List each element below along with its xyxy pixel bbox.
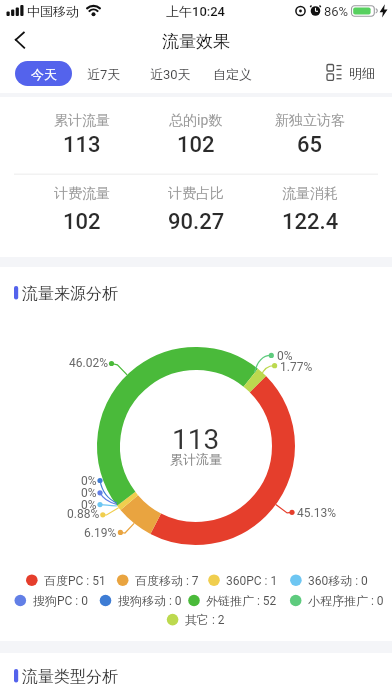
- staticText: 今天: [31, 66, 57, 82]
- staticText: 明细: [349, 65, 375, 81]
- staticText: 0.88%: [67, 507, 100, 521]
- staticText: 65: [297, 132, 323, 158]
- staticText: 近7天: [87, 66, 121, 82]
- staticText: 百度PC : 51: [44, 573, 106, 588]
- staticText: 0%: [277, 349, 293, 363]
- staticText: 46.02%: [69, 356, 108, 370]
- staticText: 流量消耗: [282, 185, 338, 201]
- button[interactable]: 近30天: [144, 65, 196, 82]
- staticText: 新独立访客: [275, 112, 345, 128]
- staticText: 自定义: [213, 66, 252, 82]
- button[interactable]: 今天: [15, 61, 72, 86]
- staticText: 近30天: [150, 66, 191, 82]
- staticText: 86%: [324, 4, 349, 19]
- button[interactable]: [6, 28, 36, 56]
- staticText: 1.77%: [280, 360, 313, 374]
- staticText: 0%: [81, 498, 97, 512]
- staticText: 搜狗PC : 0: [33, 593, 88, 608]
- staticText: 360移动 : 0: [308, 573, 368, 588]
- staticText: 小程序推广 : 0: [308, 593, 384, 608]
- button[interactable]: 明细: [325, 64, 375, 82]
- button[interactable]: 近7天: [81, 65, 126, 82]
- staticText: 计费流量: [54, 185, 110, 201]
- staticText: 102: [177, 132, 215, 158]
- staticText: 0%: [81, 486, 97, 500]
- staticText: 百度移动 : 7: [135, 573, 199, 588]
- staticText: 中国移动: [27, 3, 79, 19]
- staticText: 外链推广 : 52: [206, 593, 277, 608]
- staticText: 45.13%: [297, 506, 336, 520]
- staticText: 流量类型分析: [22, 667, 118, 684]
- staticText: 360PC : 1: [226, 574, 278, 588]
- staticText: 90.27: [168, 209, 225, 235]
- staticText: 流量来源分析: [22, 284, 118, 301]
- staticText: 0%: [81, 474, 97, 488]
- staticText: 累计流量: [54, 112, 110, 128]
- staticText: 上午10:24: [166, 3, 226, 19]
- staticText: 113: [63, 132, 101, 158]
- staticText: 122.4: [282, 209, 339, 235]
- button[interactable]: 自定义: [210, 65, 254, 82]
- staticText: 113: [172, 423, 220, 453]
- staticText: 6.19%: [84, 526, 117, 540]
- staticText: 102: [63, 209, 101, 235]
- staticText: 计费占比: [168, 185, 224, 201]
- staticText: 总的ip数: [169, 112, 223, 128]
- staticText: 搜狗移动 : 0: [118, 593, 182, 608]
- staticText: 流量效果: [162, 31, 230, 51]
- staticText: 其它 : 2: [185, 612, 225, 627]
- staticText: 累计流量: [170, 451, 222, 467]
